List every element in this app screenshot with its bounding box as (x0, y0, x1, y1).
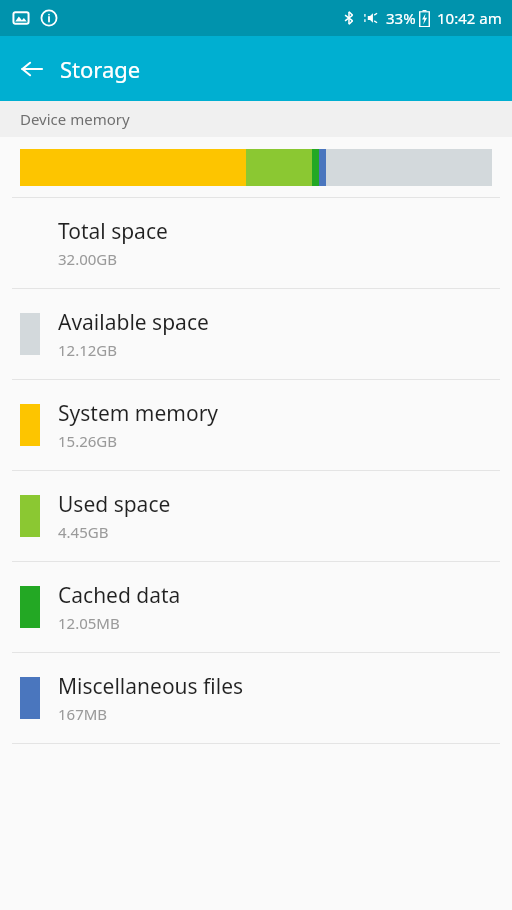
button[interactable]: Available space (0, 289, 512, 379)
staticText: Cached data (58, 581, 181, 610)
staticText: 167MB (58, 704, 108, 724)
staticText: Available space (58, 308, 209, 337)
staticText: 15.26GB (58, 431, 118, 451)
staticText: 10:42 am (437, 8, 502, 28)
staticText: Used space (58, 490, 171, 519)
staticText: Device memory (20, 109, 130, 129)
staticText: Storage (60, 54, 141, 84)
staticText: 12.05MB (58, 613, 120, 633)
staticText: System memory (58, 399, 219, 428)
staticText: 33% (386, 8, 416, 28)
button[interactable]: System memory (0, 380, 512, 470)
button[interactable]: Back (8, 45, 56, 93)
staticText: 12.12GB (58, 340, 118, 360)
staticText: Total space (58, 217, 168, 246)
button[interactable]: Total space (0, 198, 512, 288)
button[interactable]: Used space (0, 471, 512, 561)
button[interactable]: Cached data (0, 562, 512, 652)
staticText: 32.00GB (58, 249, 118, 269)
staticText: 4.45GB (58, 522, 109, 542)
button[interactable]: Miscellaneous files (0, 653, 512, 743)
staticText: Miscellaneous files (58, 672, 244, 701)
